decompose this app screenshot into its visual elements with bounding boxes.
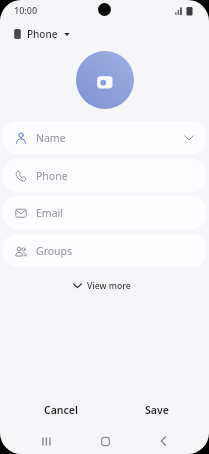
button[interactable] bbox=[149, 428, 177, 454]
button[interactable]: Cancel bbox=[21, 399, 101, 421]
staticText: View more bbox=[87, 280, 131, 292]
button[interactable]: Save bbox=[117, 399, 197, 421]
staticText: Groups bbox=[36, 244, 73, 258]
button[interactable] bbox=[91, 428, 119, 454]
staticText: Phone bbox=[27, 27, 58, 41]
button[interactable] bbox=[32, 428, 61, 454]
staticText: Save bbox=[145, 403, 169, 417]
button[interactable]: Name bbox=[3, 121, 206, 154]
button[interactable] bbox=[76, 51, 134, 109]
button[interactable]: Email bbox=[3, 196, 206, 229]
staticText: Email bbox=[36, 206, 63, 220]
staticText: Cancel bbox=[44, 403, 78, 417]
staticText: Name bbox=[36, 131, 66, 145]
button[interactable]: Phone bbox=[3, 159, 206, 192]
staticText: Phone bbox=[36, 169, 68, 183]
button[interactable]: Phone bbox=[10, 24, 74, 44]
button[interactable]: Groups bbox=[3, 234, 206, 267]
staticText: 10:00 bbox=[14, 4, 38, 16]
button[interactable]: View more bbox=[0, 276, 206, 296]
